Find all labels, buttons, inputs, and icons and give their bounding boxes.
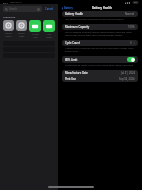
button[interactable]: Back	[61, 6, 73, 10]
staticText: Sep 02, 2024	[119, 77, 135, 81]
button[interactable]: Search	[3, 6, 42, 12]
button[interactable]: Battery Health	[3, 20, 14, 37]
button[interactable]: Low Power	[43, 20, 55, 38]
button[interactable]: First Use	[62, 76, 138, 82]
button[interactable]: 80 percent limit toggle	[127, 57, 135, 62]
staticText: Suggested	[3, 15, 16, 18]
staticText: 3	[130, 41, 132, 45]
other: Search	[5, 8, 8, 11]
staticText: Charging will be limited to 80% to help …	[65, 64, 135, 67]
button[interactable]: Cancel	[44, 7, 55, 11]
staticText: Battery	[64, 6, 73, 10]
staticText: 80% Limit	[65, 58, 78, 62]
staticText: 9:41	[3, 1, 8, 4]
staticText: Battery Health	[5, 32, 12, 37]
staticText: This is a measure of battery capacity re…	[65, 31, 135, 37]
staticText: A battery cycle is used each time you us…	[65, 47, 135, 53]
staticText: Low Power	[46, 33, 52, 38]
staticText: Battery Usage	[18, 32, 25, 37]
staticText: Cycle Count	[65, 41, 80, 45]
staticText: Normal	[125, 12, 135, 16]
staticText: Manufacture Date	[65, 71, 88, 75]
button[interactable]: Charge Limit	[29, 20, 41, 38]
staticText: Wed Oct 16	[10, 1, 22, 4]
button[interactable]: Cycle Count	[62, 40, 138, 46]
staticText: Charge Limit	[32, 33, 39, 38]
other: Back	[61, 7, 64, 10]
staticText: Battery Health	[65, 12, 84, 16]
staticText: Search	[9, 7, 18, 11]
staticText: Jul 21, 2024	[121, 71, 135, 75]
staticText: First Use	[65, 77, 76, 81]
staticText: Maximum Capacity	[65, 25, 90, 29]
button[interactable]: Battery Usage	[16, 20, 27, 37]
button[interactable]: Maximum Capacity	[62, 24, 138, 30]
button[interactable]: Battery Health	[62, 11, 138, 17]
staticText: Your battery is currently supporting nor…	[65, 18, 125, 21]
staticText: 100%	[128, 25, 135, 29]
button[interactable]: 80% Limit	[62, 56, 138, 63]
staticText: Battery Health	[92, 6, 112, 10]
staticText: Cancel	[45, 7, 54, 11]
button[interactable]: Clear search	[37, 8, 40, 11]
button[interactable]: Manufacture Date	[62, 70, 138, 76]
